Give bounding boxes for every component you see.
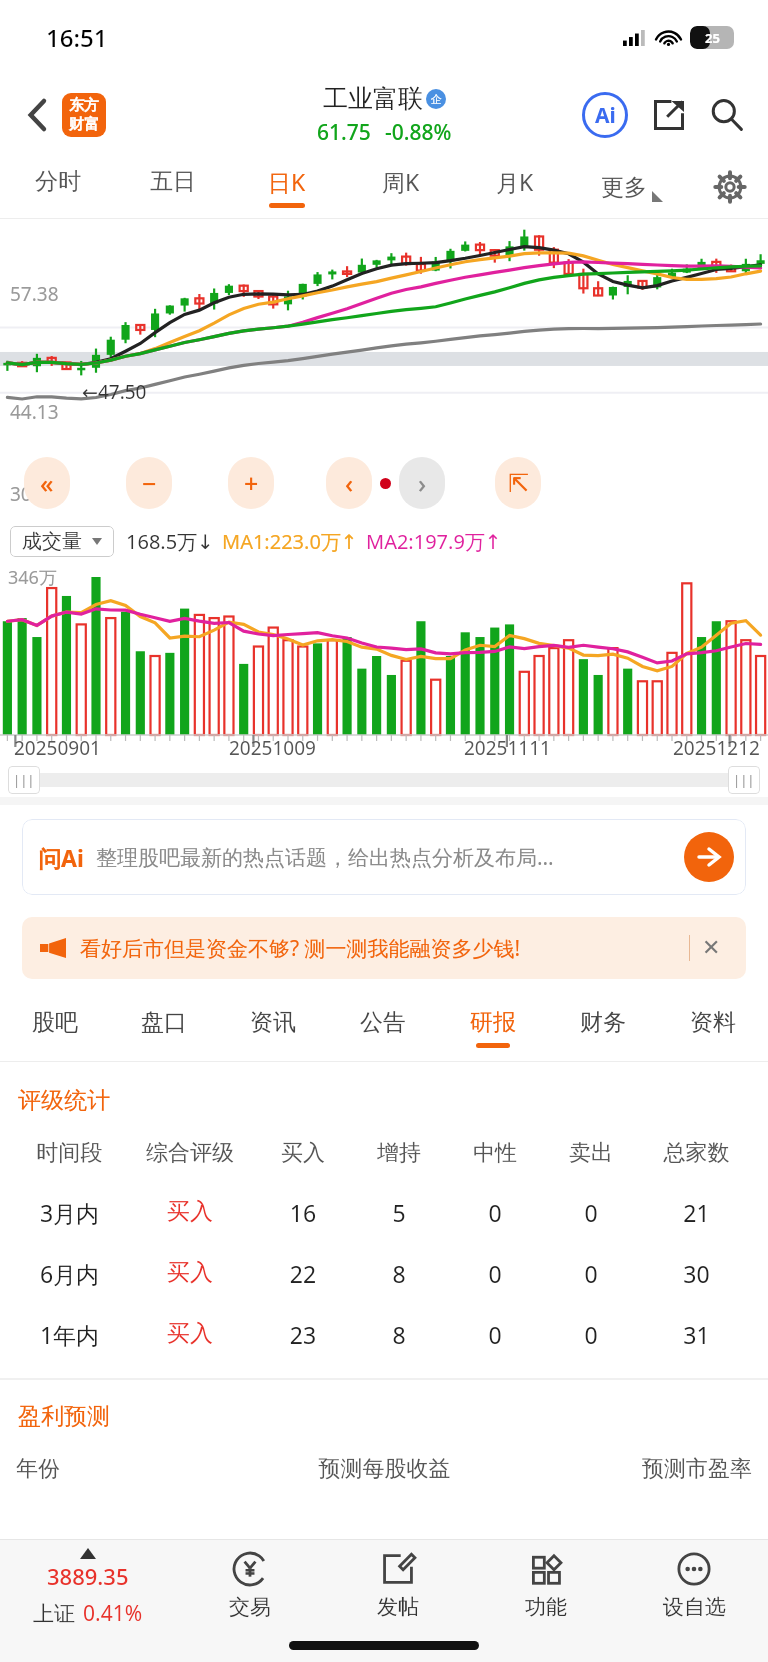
button[interactable]: 周K <box>344 156 458 218</box>
staticText: 时间段 <box>14 1139 125 1167</box>
button[interactable]: 五日 <box>115 156 230 218</box>
button[interactable]: Zoom out <box>126 457 172 509</box>
staticText: 25 <box>705 29 720 47</box>
button[interactable]: Search <box>702 90 752 140</box>
button[interactable]: 设自选 <box>620 1548 768 1620</box>
button[interactable]: 资料 <box>658 995 768 1061</box>
button[interactable]: 盘口 <box>109 995 218 1061</box>
staticText: 31 <box>639 1319 754 1350</box>
button[interactable]: 3889.35 <box>0 1548 176 1628</box>
button[interactable]: 功能 <box>472 1548 620 1620</box>
staticText: 0 <box>447 1319 543 1350</box>
staticText: 20251009 <box>229 735 316 761</box>
staticText: « <box>40 466 54 500</box>
staticText: 成交量 <box>22 529 82 554</box>
button[interactable]: 财务 <box>548 995 658 1061</box>
button[interactable]: 成交量 <box>22 529 102 554</box>
staticText: 8 <box>351 1319 447 1350</box>
button[interactable]: 1年内 <box>14 1319 754 1350</box>
button[interactable]: Previous <box>326 457 372 509</box>
staticText: 研报 <box>470 1008 516 1037</box>
button[interactable]: 发帖 <box>324 1548 472 1620</box>
staticText: 0 <box>447 1258 543 1289</box>
staticText: 57.38 <box>10 281 59 307</box>
staticText: 分时 <box>35 167 81 196</box>
staticText: MA1:223.0万↑ <box>222 528 358 555</box>
staticText: 8 <box>351 1258 447 1289</box>
staticText: 综合评级 <box>125 1139 255 1167</box>
button[interactable]: 月K <box>458 156 572 218</box>
staticText: 20251111 <box>464 735 551 761</box>
staticText: 问Ai <box>38 842 84 873</box>
staticText: 东方 <box>69 96 99 115</box>
button[interactable]: Next <box>399 457 445 509</box>
button[interactable]: 分时 <box>0 156 115 218</box>
staticText: 上证 <box>33 1601 75 1627</box>
staticText: 0 <box>543 1258 639 1289</box>
staticText: 周K <box>382 166 420 197</box>
staticText: 61.75 <box>317 118 371 147</box>
staticText: 346万 <box>8 565 57 590</box>
staticText: 总家数 <box>639 1139 754 1167</box>
staticText: 0 <box>543 1197 639 1228</box>
staticText: 0.41% <box>83 1599 143 1628</box>
staticText: 21 <box>639 1197 754 1228</box>
staticText: 0 <box>447 1197 543 1228</box>
staticText: 工业富联 <box>323 83 423 114</box>
button[interactable]: Back <box>16 94 58 136</box>
staticText: 资讯 <box>250 1008 296 1037</box>
staticText: 3月内 <box>14 1197 125 1228</box>
staticText: 公告 <box>360 1008 406 1037</box>
staticText: 功能 <box>525 1594 567 1620</box>
staticText: ✕ <box>702 935 721 961</box>
button[interactable]: 交易 <box>176 1548 324 1620</box>
staticText: 5 <box>351 1197 447 1228</box>
button[interactable]: Close <box>690 917 732 979</box>
button[interactable]: 公告 <box>328 995 438 1061</box>
button[interactable]: 6月内 <box>14 1258 754 1289</box>
staticText: 卖出 <box>543 1139 639 1167</box>
staticText: 盘口 <box>141 1008 187 1037</box>
button[interactable]: 日K <box>230 156 344 218</box>
staticText: 23 <box>255 1319 351 1350</box>
staticText: 预测每股收益 <box>221 1455 548 1483</box>
button[interactable]: Settings <box>692 156 768 218</box>
button[interactable]: 问Ai <box>22 819 746 895</box>
staticText: 买入 <box>125 1258 255 1287</box>
staticText: ←47.50 <box>82 379 147 405</box>
staticText: − <box>142 466 157 500</box>
button[interactable]: 股吧 <box>0 995 109 1061</box>
staticText: 更多 <box>601 173 647 202</box>
staticText: ||| <box>13 771 35 789</box>
button[interactable]: Skip back <box>24 457 70 509</box>
button[interactable]: Zoom in <box>228 457 274 509</box>
staticText: 年份 <box>16 1455 221 1483</box>
button[interactable]: 研报 <box>438 995 548 1061</box>
button[interactable]: Fullscreen <box>495 457 541 509</box>
staticText: -0.88% <box>385 118 452 147</box>
button[interactable]: AI assistant <box>578 88 632 142</box>
button[interactable]: Share <box>644 90 694 140</box>
button[interactable]: 更多 <box>572 156 692 218</box>
button[interactable]: 3月内 <box>14 1197 754 1228</box>
staticText: 44.13 <box>10 399 59 425</box>
staticText: 整理股吧最新的热点话题，给出热点分析及布局… <box>96 843 678 872</box>
staticText: 五日 <box>150 167 196 196</box>
staticText: 评级统计 <box>18 1086 110 1115</box>
button[interactable]: 看好后市但是资金不够? 测一测我能融资多少钱! <box>22 917 746 979</box>
staticText: 设自选 <box>663 1594 726 1620</box>
button[interactable]: 资讯 <box>218 995 328 1061</box>
staticText: 预测市盈率 <box>548 1455 752 1483</box>
staticText: 6月内 <box>14 1258 125 1289</box>
staticText: 3889.35 <box>47 1561 129 1591</box>
staticText: 16 <box>255 1197 351 1228</box>
staticText: ‹ <box>345 466 354 500</box>
staticText: MA2:197.9万↑ <box>366 528 502 555</box>
staticText: 168.5万↓ <box>126 528 214 555</box>
staticText: 买入 <box>255 1139 351 1167</box>
button[interactable]: 东方财富 <box>62 93 106 137</box>
staticText: 22 <box>255 1258 351 1289</box>
staticText: 0 <box>543 1319 639 1350</box>
staticText: 企 <box>431 92 442 106</box>
staticText: 月K <box>496 166 534 197</box>
